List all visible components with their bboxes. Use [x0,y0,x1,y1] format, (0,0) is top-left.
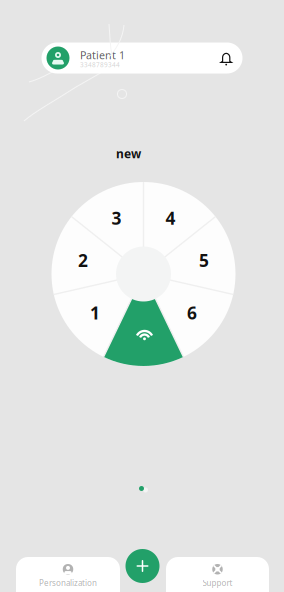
staticText: 3348789344 [80,60,120,69]
staticText: Personalization [39,577,97,588]
button[interactable]: Patient 1 [41,42,242,73]
staticText: 6 [187,301,197,324]
staticText: 2 [78,248,88,272]
button[interactable]: Add [121,545,163,587]
staticText: 5 [199,248,209,272]
staticText: 4 [165,206,175,230]
staticText: 3 [112,206,122,230]
staticText: new [116,145,141,162]
button[interactable]: Personalization [16,557,120,592]
staticText: Support [202,577,232,588]
staticText: 1 [90,301,100,324]
button[interactable]: Support [166,557,269,592]
staticText: Patient 1 [80,48,125,62]
